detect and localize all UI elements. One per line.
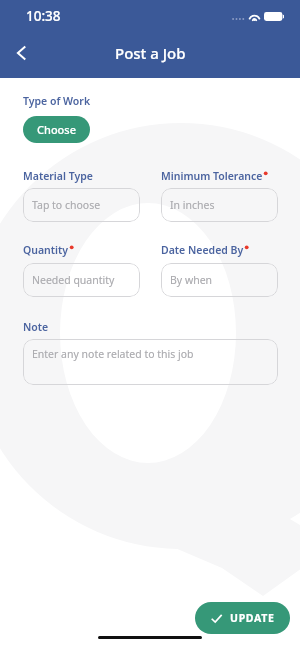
staticText: Note [23, 320, 49, 334]
staticText: In inches [170, 198, 215, 212]
staticText: Tap to choose [32, 198, 101, 212]
staticText: Date Needed By [161, 243, 244, 257]
staticText: Post a Job [115, 43, 186, 63]
button[interactable]: By when [161, 263, 278, 297]
button[interactable]: Tap to choose [23, 188, 140, 222]
button[interactable]: In inches [161, 188, 278, 222]
staticText: Needed quantity [32, 273, 115, 287]
staticText: Quantity [23, 243, 69, 257]
staticText: Type of Work [23, 94, 91, 108]
button[interactable]: Enter any note related to this job [23, 339, 278, 385]
staticText: Enter any note related to this job [32, 347, 194, 361]
staticText: Choose [37, 122, 76, 137]
staticText: Material Type [23, 169, 93, 183]
staticText: Minimum Tolerance [161, 169, 263, 183]
button[interactable]: Needed quantity [23, 263, 140, 297]
button[interactable]: UPDATE [195, 602, 290, 634]
staticText: By when [170, 273, 213, 287]
staticText: UPDATE [230, 611, 275, 625]
staticText: 10:38 [26, 7, 61, 25]
button[interactable]: Choose [23, 116, 90, 143]
button[interactable]: Back [4, 36, 38, 70]
